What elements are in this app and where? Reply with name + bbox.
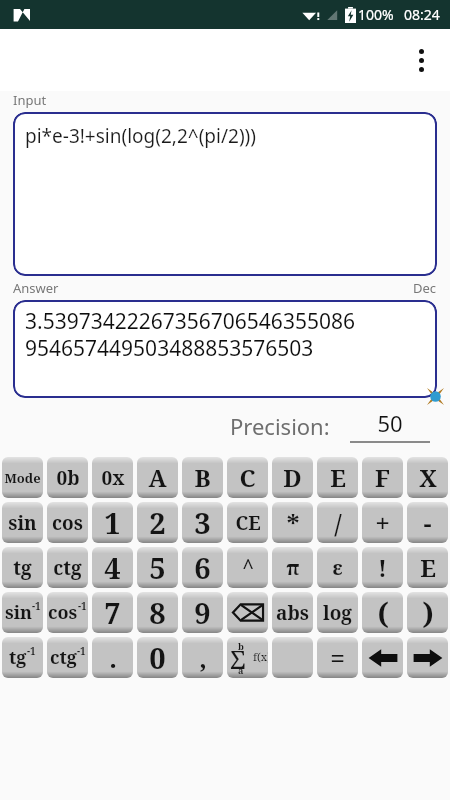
button[interactable]: 50: [353, 408, 427, 438]
button[interactable]: C: [227, 457, 268, 498]
button[interactable]: Resize answer field: [427, 388, 444, 405]
button[interactable]: sin: [2, 502, 43, 543]
staticText: E: [330, 461, 346, 494]
button[interactable]: B: [182, 457, 223, 498]
staticText: (: [377, 594, 389, 632]
button[interactable]: (: [362, 592, 403, 633]
button[interactable]: Blank key: [272, 637, 313, 678]
button[interactable]: 9: [182, 592, 223, 633]
staticText: Σ: [230, 641, 246, 676]
staticText: f(x): [253, 649, 268, 664]
staticText: Answer: [13, 279, 59, 297]
button[interactable]: sin: [2, 592, 43, 633]
staticText: /: [334, 505, 342, 540]
staticText: Mode: [4, 469, 41, 487]
button[interactable]: 8: [137, 592, 178, 633]
button[interactable]: tg: [2, 547, 43, 588]
staticText: A: [148, 461, 167, 494]
button[interactable]: pi*e-3!+sin(log(2,2^(pi/2))): [13, 112, 437, 276]
button[interactable]: D: [272, 457, 313, 498]
staticText: 3: [194, 503, 211, 542]
staticText: log: [323, 600, 352, 626]
staticText: cos: [48, 600, 78, 625]
staticText: -: [423, 505, 432, 540]
button[interactable]: 7: [92, 592, 133, 633]
button[interactable]: tg: [2, 637, 43, 678]
button[interactable]: ,: [182, 637, 223, 678]
staticText: 0x: [101, 465, 125, 491]
staticText: CE: [235, 510, 261, 536]
button[interactable]: =: [317, 637, 358, 678]
staticText: Input: [13, 91, 47, 109]
button[interactable]: -: [407, 502, 448, 543]
button[interactable]: /: [317, 502, 358, 543]
button[interactable]: A: [137, 457, 178, 498]
button[interactable]: !: [362, 547, 403, 588]
staticText: 6: [194, 548, 211, 587]
staticText: -1: [27, 644, 36, 658]
button[interactable]: ctg: [47, 637, 88, 678]
button[interactable]: ε: [317, 547, 358, 588]
button[interactable]: 4: [92, 547, 133, 588]
staticText: D: [283, 461, 302, 494]
staticText: 4: [104, 548, 121, 587]
button[interactable]: 6: [182, 547, 223, 588]
staticText: ^: [242, 553, 254, 582]
button[interactable]: ctg: [47, 547, 88, 588]
button[interactable]: *: [272, 502, 313, 543]
staticText: ε: [332, 554, 343, 581]
button[interactable]: ^: [227, 547, 268, 588]
button[interactable]: 0x: [92, 457, 133, 498]
button[interactable]: 3.53973422267356706546355086 95465744950…: [13, 300, 437, 398]
staticText: 8: [149, 593, 166, 632]
staticText: !: [378, 552, 387, 583]
staticText: abs: [276, 600, 309, 626]
staticText: +: [375, 505, 390, 540]
button[interactable]: Move cursor left: [362, 637, 403, 678]
staticText: Precision:: [230, 411, 330, 441]
button[interactable]: cos: [47, 502, 88, 543]
staticText: Dec: [413, 279, 437, 297]
button[interactable]: abs: [272, 592, 313, 633]
button[interactable]: E: [407, 547, 448, 588]
button[interactable]: 1: [92, 502, 133, 543]
staticText: B: [194, 461, 211, 494]
button[interactable]: CE: [227, 502, 268, 543]
button[interactable]: 2: [137, 502, 178, 543]
staticText: sin: [8, 510, 37, 536]
button[interactable]: π: [272, 547, 313, 588]
button[interactable]: E: [317, 457, 358, 498]
button[interactable]: cos: [47, 592, 88, 633]
staticText: 50: [377, 408, 403, 438]
staticText: 2: [149, 503, 166, 542]
button[interactable]: Mode: [2, 457, 43, 498]
button[interactable]: F: [362, 457, 403, 498]
staticText: =: [330, 640, 345, 675]
staticText: C: [239, 461, 256, 494]
button[interactable]: Summation: [227, 637, 268, 678]
button[interactable]: Backspace: [227, 592, 268, 633]
staticText: 08:24: [404, 5, 440, 24]
button[interactable]: log: [317, 592, 358, 633]
staticText: b: [238, 640, 244, 652]
staticText: tg: [13, 555, 32, 581]
button[interactable]: X: [407, 457, 448, 498]
button[interactable]: 0: [137, 637, 178, 678]
button[interactable]: .: [92, 637, 133, 678]
button[interactable]: 3: [182, 502, 223, 543]
button[interactable]: 5: [137, 547, 178, 588]
staticText: ctg: [50, 645, 77, 670]
button[interactable]: ): [407, 592, 448, 633]
staticText: ): [422, 594, 434, 632]
staticText: -1: [77, 644, 86, 658]
button[interactable]: +: [362, 502, 403, 543]
button[interactable]: More options: [399, 38, 443, 82]
staticText: sin: [5, 600, 32, 625]
staticText: -1: [32, 599, 41, 613]
staticText: .: [109, 640, 117, 675]
staticText: 1: [104, 503, 121, 542]
staticText: 7: [104, 593, 121, 632]
button[interactable]: Move cursor right: [407, 637, 448, 678]
button[interactable]: 0b: [47, 457, 88, 498]
staticText: F: [375, 461, 390, 494]
